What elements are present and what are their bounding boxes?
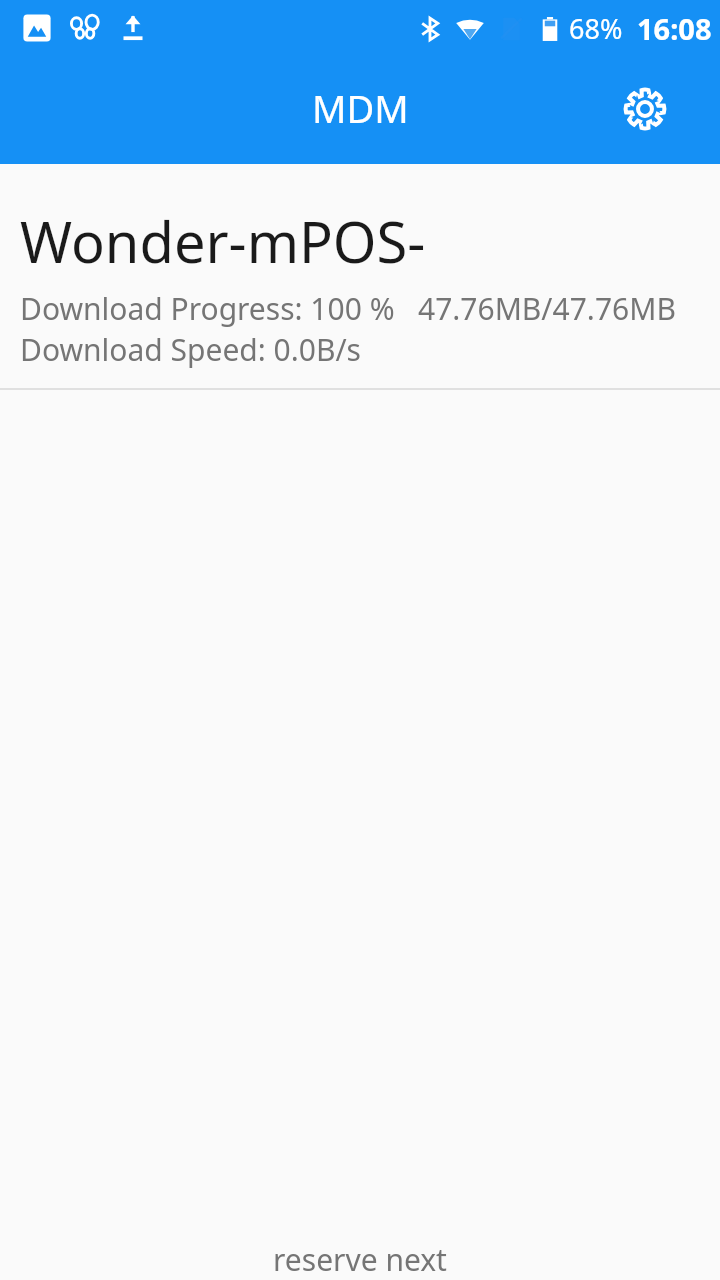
staticText: Download Progress: 100 % 47.76MB/47.76MB: [20, 288, 676, 329]
button[interactable]: reserve next: [0, 1239, 720, 1280]
button[interactable]: Settings: [616, 80, 674, 138]
staticText: 68%: [569, 10, 623, 47]
staticText: reserve next: [273, 1239, 447, 1280]
staticText: 16:08: [637, 9, 712, 48]
staticText: Wonder-mPOS-: [20, 203, 426, 279]
staticText: MDM: [312, 82, 409, 134]
staticText: Download Speed: 0.0B/s: [20, 329, 361, 370]
